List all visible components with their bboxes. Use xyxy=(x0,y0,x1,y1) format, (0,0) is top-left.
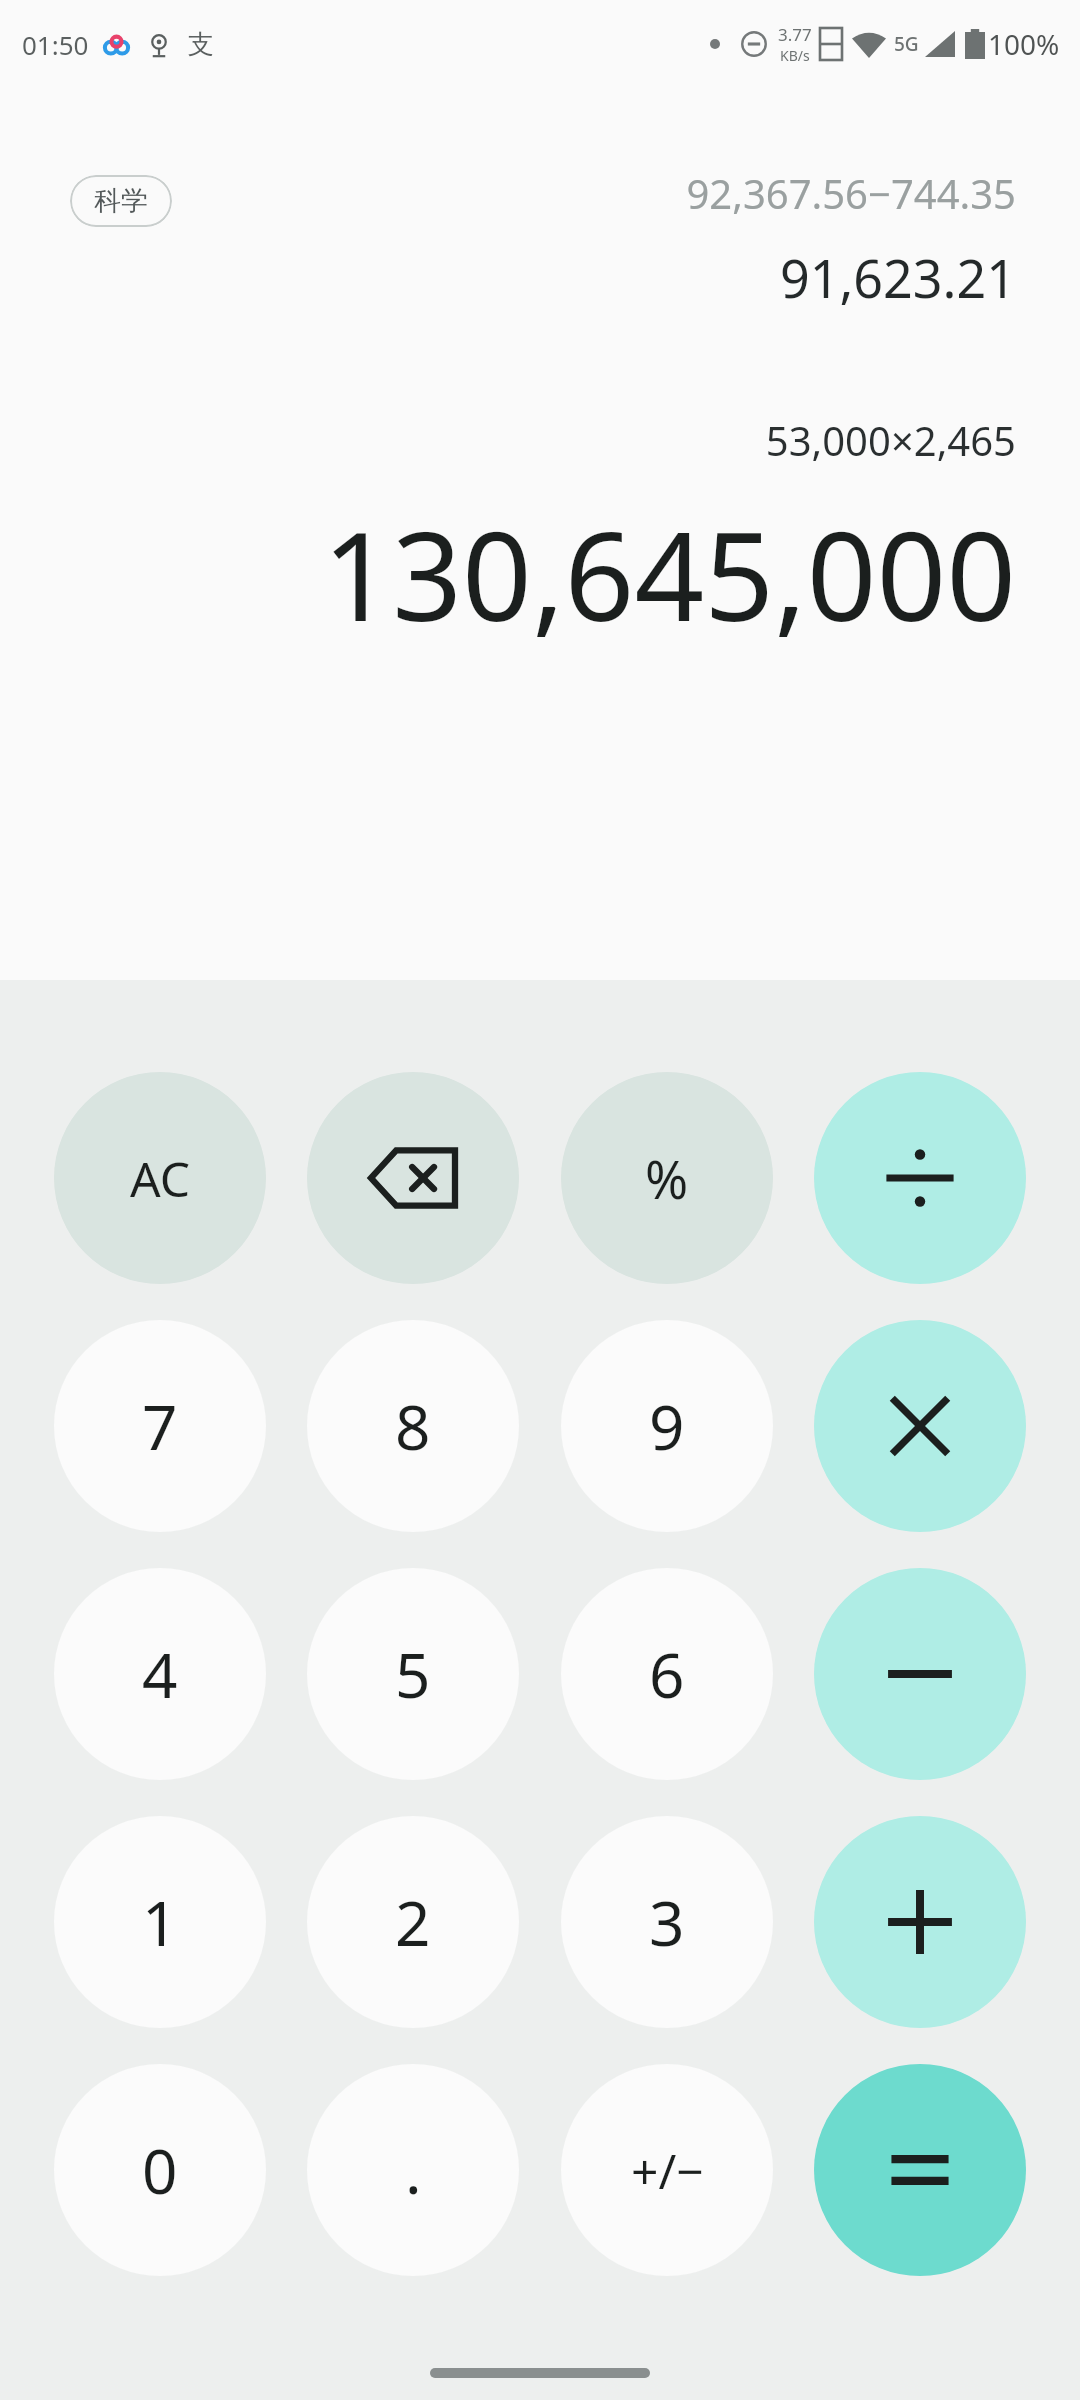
staticText: 7 xyxy=(142,1384,178,1468)
staticText: 53,000×2,465 xyxy=(765,413,1016,467)
staticText: 科学 xyxy=(94,184,148,218)
button[interactable]: Equals xyxy=(814,2064,1026,2276)
staticText: 9 xyxy=(649,1384,685,1468)
staticText: 8 xyxy=(395,1384,431,1468)
staticText: +/− xyxy=(631,2138,704,2203)
button[interactable]: +/− xyxy=(561,2064,773,2276)
button[interactable]: 7 xyxy=(54,1320,266,1532)
button[interactable]: Backspace xyxy=(307,1072,519,1284)
button[interactable]: Divide xyxy=(814,1072,1026,1284)
button[interactable]: 3 xyxy=(561,1816,773,2028)
button[interactable]: Minus xyxy=(814,1568,1026,1780)
button[interactable]: 5 xyxy=(307,1568,519,1780)
button[interactable]: 6 xyxy=(561,1568,773,1780)
button[interactable]: Plus xyxy=(814,1816,1026,2028)
staticText: 4 xyxy=(142,1632,178,1716)
staticText: 92,367.56−744.35 xyxy=(686,166,1016,220)
button[interactable]: AC xyxy=(54,1072,266,1284)
staticText: 6 xyxy=(649,1632,685,1716)
staticText: 91,623.21 xyxy=(779,242,1016,313)
staticText: 3 xyxy=(649,1880,685,1964)
staticText: AC xyxy=(130,1146,191,1211)
staticText: % xyxy=(645,1143,689,1214)
staticText: 100% xyxy=(988,25,1060,63)
button[interactable]: 9 xyxy=(561,1320,773,1532)
button[interactable]: 1 xyxy=(54,1816,266,2028)
button[interactable]: 2 xyxy=(307,1816,519,2028)
button[interactable]: % xyxy=(561,1072,773,1284)
staticText: 3.77 xyxy=(778,23,812,46)
staticText: 2 xyxy=(395,1880,431,1964)
button[interactable]: 8 xyxy=(307,1320,519,1532)
button[interactable]: 科学 xyxy=(70,175,172,227)
staticText: KB/s xyxy=(780,46,810,65)
button[interactable]: 4 xyxy=(54,1568,266,1780)
button[interactable]: . xyxy=(307,2064,519,2276)
staticText: 01:50 xyxy=(22,27,89,62)
staticText: 130,645,000 xyxy=(322,491,1016,657)
staticText: 1 xyxy=(142,1880,178,1964)
button[interactable]: 0 xyxy=(54,2064,266,2276)
staticText: 5G xyxy=(894,31,919,57)
staticText: 0 xyxy=(142,2128,178,2212)
button[interactable]: Multiply xyxy=(814,1320,1026,1532)
staticText: 5 xyxy=(395,1632,431,1716)
staticText: 支 xyxy=(188,28,214,61)
staticText: . xyxy=(405,2128,422,2212)
